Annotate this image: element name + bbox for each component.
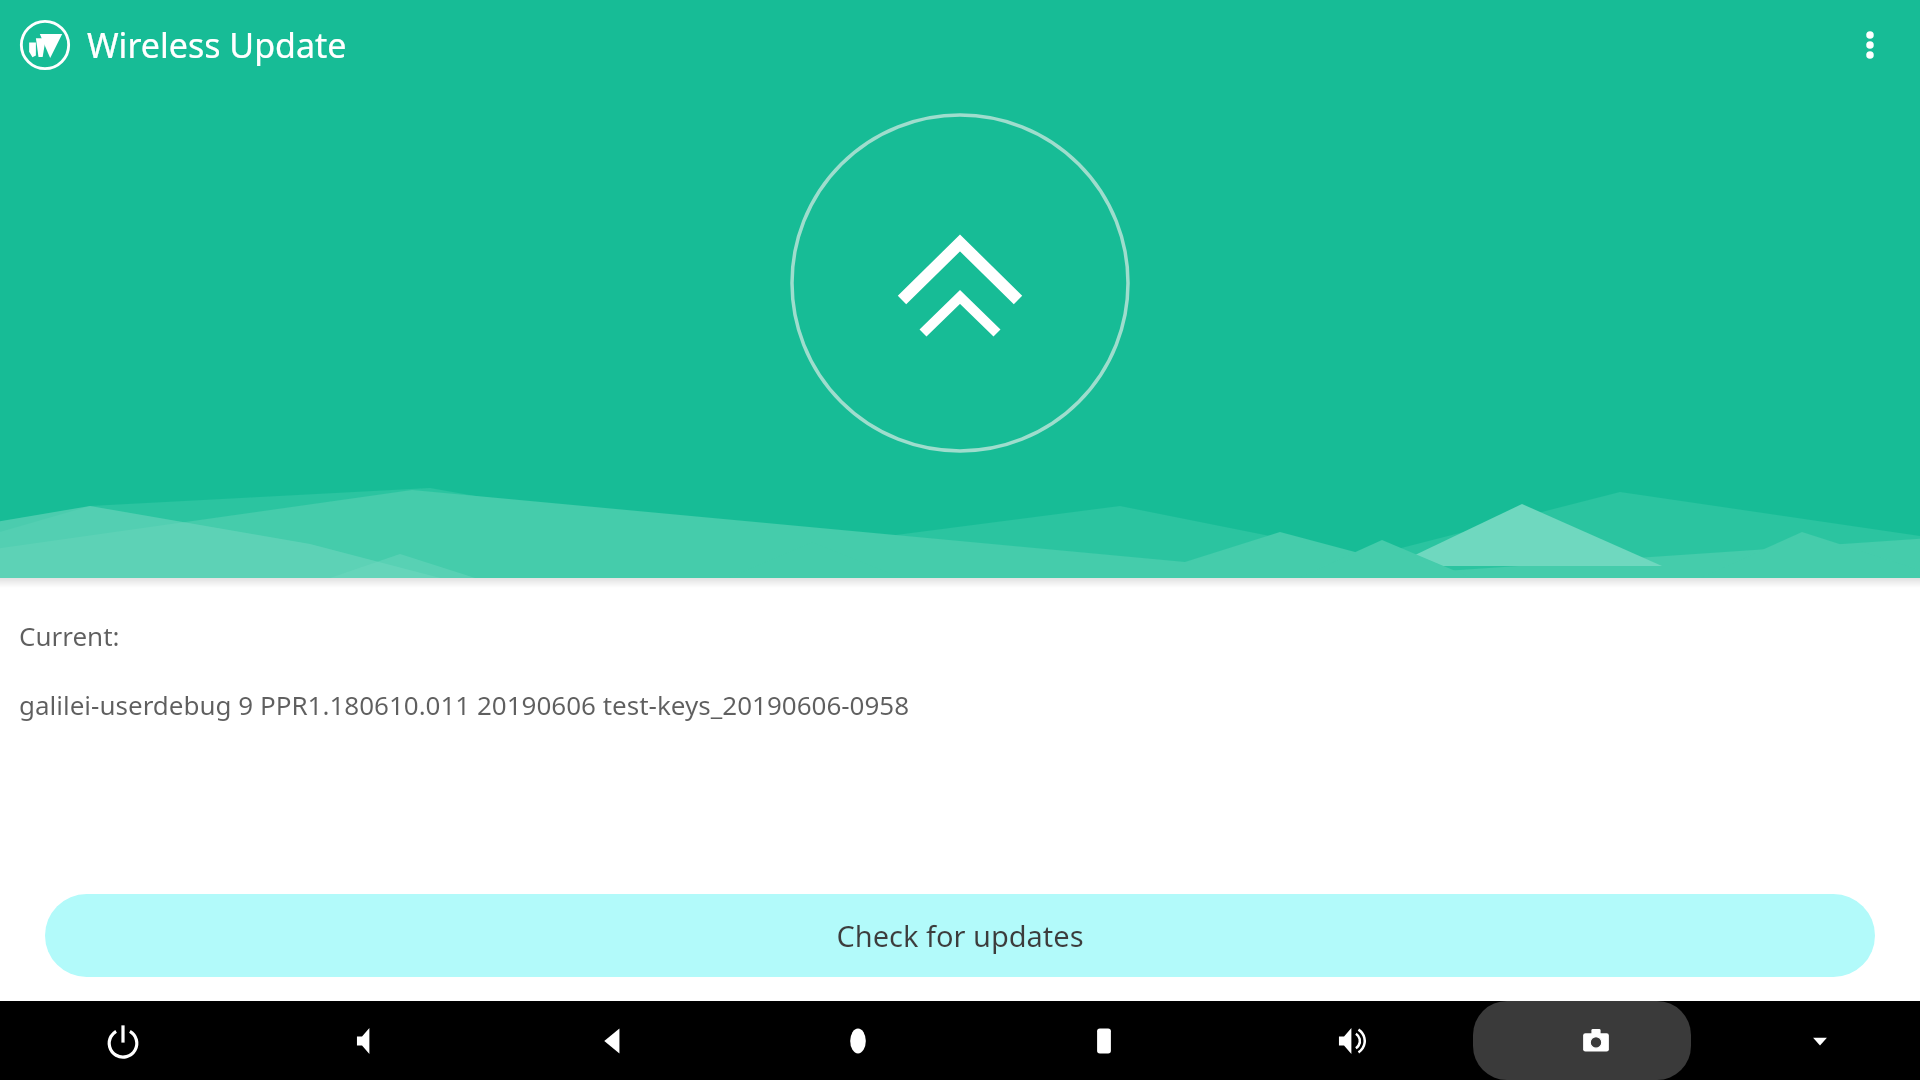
button[interactable]: Power	[0, 1001, 245, 1080]
button[interactable]: Volume down	[245, 1001, 490, 1080]
button[interactable]: More options	[1834, 9, 1906, 81]
button[interactable]: Collapse	[1719, 1001, 1920, 1080]
staticText: galilei-userdebug 9 PPR1.180610.011 2019…	[19, 687, 910, 722]
button[interactable]: Recents	[981, 1001, 1227, 1080]
button[interactable]: Back	[490, 1001, 735, 1080]
staticText: Current:	[19, 618, 120, 653]
button[interactable]: Home	[735, 1001, 981, 1080]
staticText: Wireless Update	[87, 22, 347, 68]
staticText: Check for updates	[836, 916, 1084, 955]
button[interactable]: Check for updates	[45, 894, 1875, 977]
button[interactable]: Screenshot	[1473, 1001, 1719, 1080]
button[interactable]: Volume up	[1227, 1001, 1473, 1080]
